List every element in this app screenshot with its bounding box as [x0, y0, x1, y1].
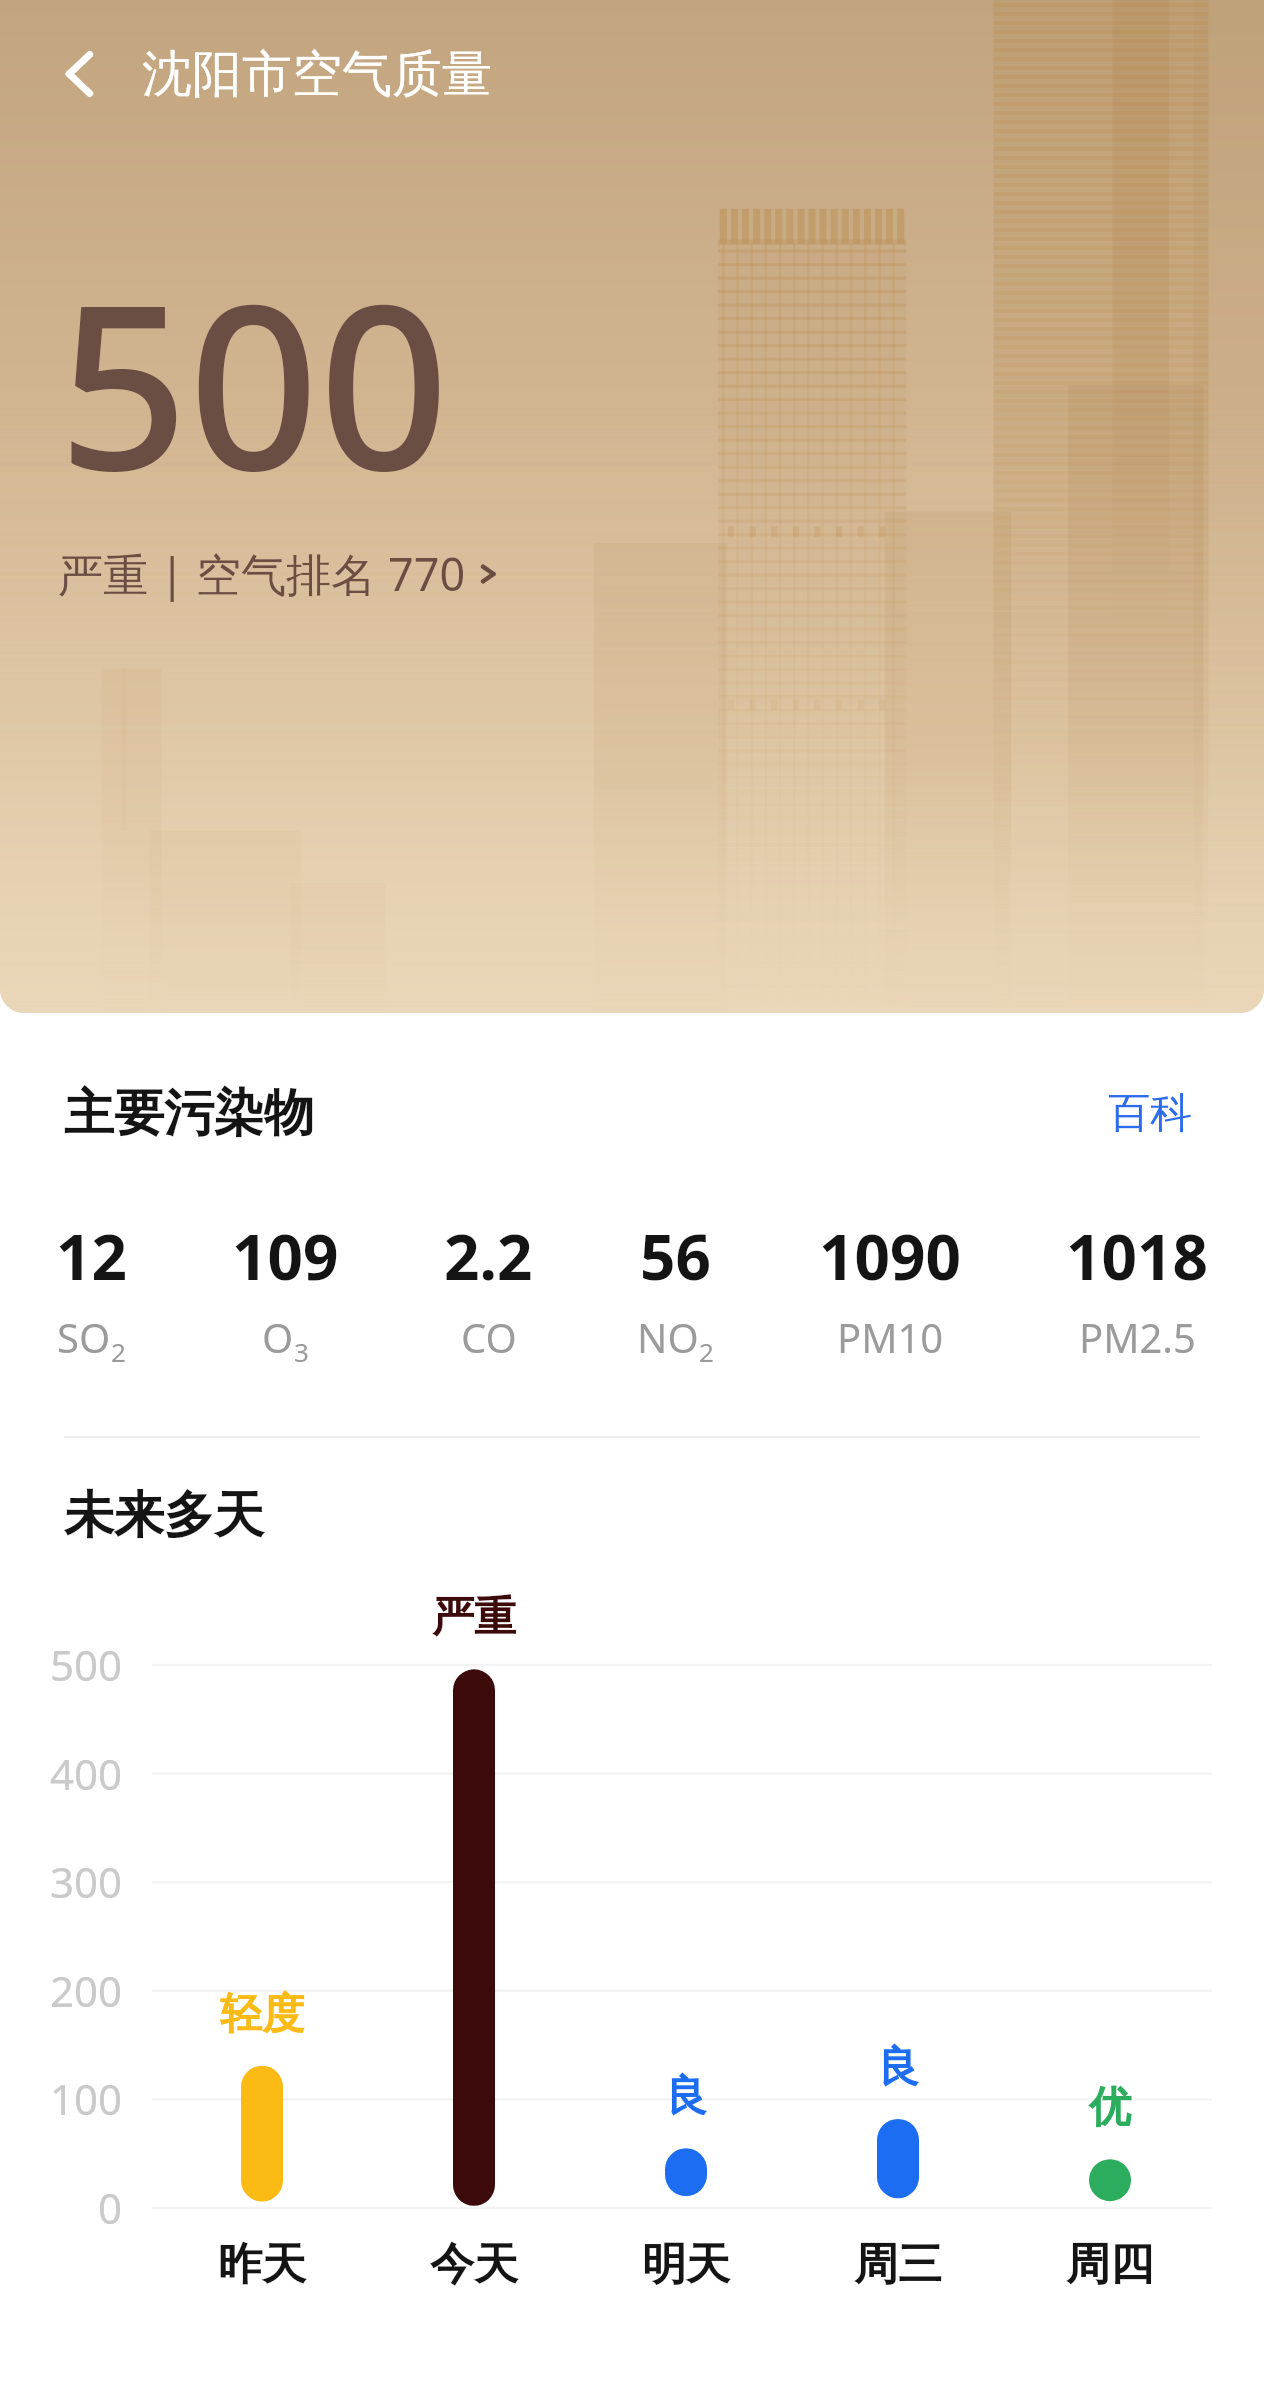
staticText: NO [637, 1310, 699, 1364]
staticText: CO [461, 1310, 517, 1364]
button[interactable]: 百科 [1100, 1079, 1200, 1148]
button[interactable]: Back [40, 34, 120, 114]
staticText: 2.2 [444, 1214, 533, 1298]
staticText: 2 [699, 1334, 714, 1369]
staticText: 1018 [1066, 1214, 1208, 1298]
staticText: 12 [56, 1214, 127, 1298]
staticText: 0 [0, 2179, 122, 2236]
staticText: 500 [58, 226, 450, 537]
button[interactable]: 明天 [601, 2237, 771, 2292]
staticText: 周三 [854, 2237, 942, 2292]
staticText: 周四 [1066, 2237, 1154, 2292]
staticText: 未来多天 [64, 1484, 264, 1547]
staticText: 1090 [819, 1214, 961, 1298]
staticText: 主要污染物 [64, 1082, 314, 1145]
staticText: 优 [1089, 2081, 1131, 2134]
staticText: 严重 | 空气排名 770 [58, 543, 466, 604]
staticText: 轻度 [220, 1988, 304, 2041]
button[interactable]: 今天 [389, 2237, 559, 2292]
staticText: 109 [232, 1214, 339, 1298]
staticText: 沈阳市空气质量 [142, 43, 492, 106]
staticText: 400 [0, 1745, 122, 1802]
staticText: 300 [0, 1853, 122, 1910]
staticText: 良 [665, 2070, 707, 2123]
staticText: SO [57, 1310, 111, 1364]
staticText: PM10 [837, 1310, 944, 1364]
staticText: 明天 [642, 2237, 730, 2292]
staticText: 3 [294, 1334, 309, 1369]
button[interactable]: 严重 | 空气排名 770 [58, 539, 512, 608]
button[interactable]: 周三 [813, 2237, 983, 2292]
staticText: 良 [877, 2041, 919, 2094]
staticText: 今天 [430, 2237, 518, 2292]
staticText: 56 [640, 1214, 711, 1298]
staticText: 500 [0, 1636, 122, 1693]
staticText: 200 [0, 1962, 122, 2019]
staticText: 百科 [1108, 1087, 1192, 1140]
staticText: O [262, 1310, 294, 1364]
staticText: 2 [111, 1334, 126, 1369]
staticText: PM2.5 [1079, 1310, 1196, 1364]
button[interactable]: 周四 [1025, 2237, 1195, 2292]
staticText: 100 [0, 2070, 122, 2127]
staticText: 昨天 [218, 2237, 306, 2292]
button[interactable]: 昨天 [177, 2237, 347, 2292]
staticText: 严重 [432, 1591, 516, 1644]
